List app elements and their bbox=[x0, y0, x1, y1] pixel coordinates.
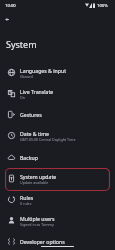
staticText: Rules bbox=[20, 194, 34, 201]
button[interactable]: Rules bbox=[0, 189, 115, 210]
button[interactable]: Date & time bbox=[0, 125, 115, 146]
staticText: Developer options bbox=[20, 238, 65, 245]
staticText: Gestures bbox=[20, 111, 42, 118]
staticText: GMT-05:00 Central Daylight Time bbox=[20, 137, 76, 142]
staticText: Update available bbox=[20, 180, 49, 185]
staticText: System update bbox=[20, 173, 57, 180]
staticText: On bbox=[20, 95, 26, 100]
button[interactable]: Developer options bbox=[0, 231, 115, 250]
staticText: Live Translate bbox=[20, 88, 54, 95]
button[interactable]: Backup bbox=[0, 147, 115, 168]
staticText: Languages & input bbox=[20, 67, 67, 74]
button[interactable]: Live Translate bbox=[0, 83, 115, 104]
staticText: Gboard bbox=[20, 74, 33, 79]
staticText: 10:00 bbox=[5, 3, 16, 9]
staticText: 100% bbox=[97, 3, 108, 9]
button[interactable]: Languages & input bbox=[0, 62, 115, 83]
staticText: Date & time bbox=[20, 130, 49, 137]
button[interactable]: Gestures bbox=[0, 104, 115, 125]
button[interactable]: Multiple users bbox=[0, 210, 115, 231]
button[interactable]: Back bbox=[0, 12, 14, 26]
staticText: 0 rules bbox=[20, 201, 32, 206]
button[interactable]: System update bbox=[0, 168, 115, 189]
staticText: Signed in as Tommy bbox=[20, 222, 54, 227]
staticText: Multiple users bbox=[20, 215, 55, 222]
staticText: System bbox=[6, 38, 37, 50]
staticText: Backup bbox=[20, 154, 38, 161]
